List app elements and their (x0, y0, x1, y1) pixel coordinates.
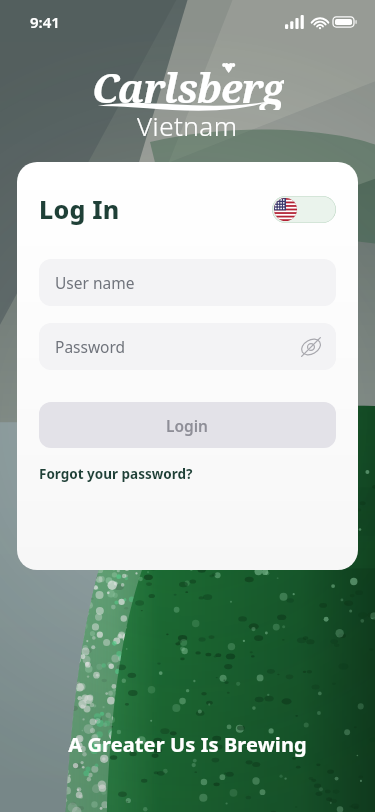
staticText: 9:41 (30, 12, 60, 32)
button[interactable]: User name (39, 259, 336, 306)
staticText: A Greater Us Is Brewing (68, 731, 307, 758)
staticText: User name (55, 272, 135, 293)
button[interactable]: Show password (300, 336, 322, 358)
staticText: Password (55, 336, 126, 357)
button[interactable]: Password (39, 323, 336, 370)
button[interactable]: Forgot your password? (39, 465, 193, 483)
button[interactable]: Change language (272, 196, 336, 223)
staticText: Login (166, 415, 209, 436)
staticText: Vietnam (137, 108, 238, 143)
button[interactable]: Login (39, 402, 336, 448)
staticText: Log In (39, 192, 120, 226)
staticText: Carlsberg (92, 60, 284, 110)
